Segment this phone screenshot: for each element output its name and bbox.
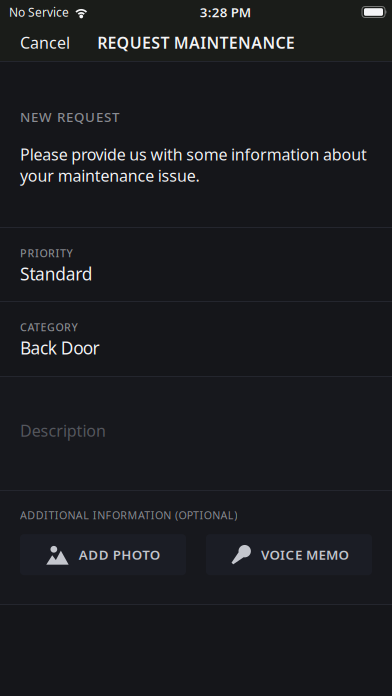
staticText: Please provide us with some information … (20, 144, 367, 186)
button[interactable]: VOICE MEMO (206, 534, 372, 575)
staticText: REQUEST MAINTENANCE (97, 32, 295, 53)
button[interactable]: PRIORITY (0, 228, 392, 301)
staticText: NEW REQUEST (20, 108, 119, 126)
staticText: No Service (9, 4, 69, 20)
button[interactable]: Cancel (14, 24, 76, 61)
staticText: Description (20, 420, 106, 441)
staticText: 3:28 PM (200, 3, 251, 21)
button[interactable]: Description (0, 377, 392, 490)
staticText: Standard (20, 262, 93, 285)
staticText: VOICE MEMO (261, 546, 348, 563)
staticText: Cancel (20, 32, 70, 53)
staticText: PRIORITY (20, 246, 72, 260)
button[interactable]: CATEGORY (0, 302, 392, 376)
button[interactable]: ADD PHOTO (20, 534, 186, 575)
staticText: ADD PHOTO (79, 546, 160, 563)
staticText: Back Door (20, 336, 99, 359)
staticText: CATEGORY (20, 320, 77, 334)
staticText: ADDITIONAL INFORMATION (OPTIONAL) (20, 508, 237, 522)
